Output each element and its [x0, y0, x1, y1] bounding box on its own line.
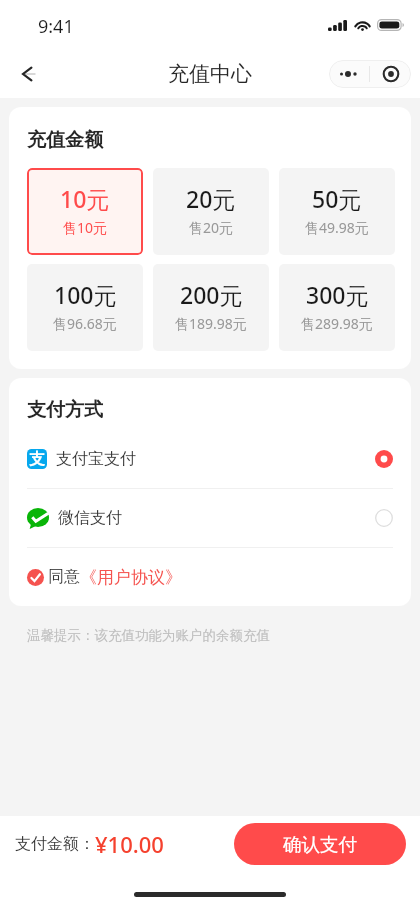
staticText: 100元	[54, 279, 117, 310]
staticText: 售189.98元	[175, 314, 247, 333]
button[interactable]: 同意	[27, 548, 393, 606]
button[interactable]: 300元	[279, 264, 395, 351]
staticText: 支付宝支付	[56, 449, 136, 469]
staticText: 售289.98元	[301, 314, 373, 333]
button[interactable]: 支	[27, 429, 393, 488]
button[interactable]: More options	[329, 60, 369, 88]
button[interactable]: Close	[370, 60, 411, 88]
staticText: 充值中心	[168, 61, 252, 87]
staticText: 充值金额	[27, 128, 103, 152]
staticText: ¥10.00	[95, 829, 164, 859]
button[interactable]: 200元	[153, 264, 269, 351]
button[interactable]: 100元	[27, 264, 143, 351]
staticText: 微信支付	[58, 508, 122, 528]
staticText: 同意	[48, 567, 80, 587]
staticText: 售10元	[63, 218, 108, 237]
staticText: 支付方式	[27, 398, 103, 422]
staticText: 300元	[306, 279, 369, 310]
button[interactable]: 确认支付	[234, 823, 406, 865]
staticText: 售49.98元	[305, 218, 369, 237]
staticText: 确认支付	[283, 833, 357, 856]
staticText: 20元	[186, 183, 236, 214]
button[interactable]: 10元	[27, 168, 143, 255]
staticText: 支付金额：	[15, 834, 95, 854]
staticText: 《用户协议》	[80, 567, 182, 588]
staticText: 10元	[60, 183, 110, 214]
button[interactable]: 50元	[279, 168, 395, 255]
staticText: 200元	[180, 279, 243, 310]
staticText: 9:41	[38, 14, 74, 39]
staticText: 售96.68元	[53, 314, 117, 333]
staticText: 50元	[312, 183, 362, 214]
button[interactable]: 微信支付	[27, 489, 393, 547]
staticText: 售20元	[189, 218, 234, 237]
staticText: 支	[29, 449, 45, 468]
button[interactable]: 20元	[153, 168, 269, 255]
button[interactable]: Back	[7, 54, 47, 94]
staticText: 温馨提示：该充值功能为账户的余额充值	[27, 627, 270, 644]
